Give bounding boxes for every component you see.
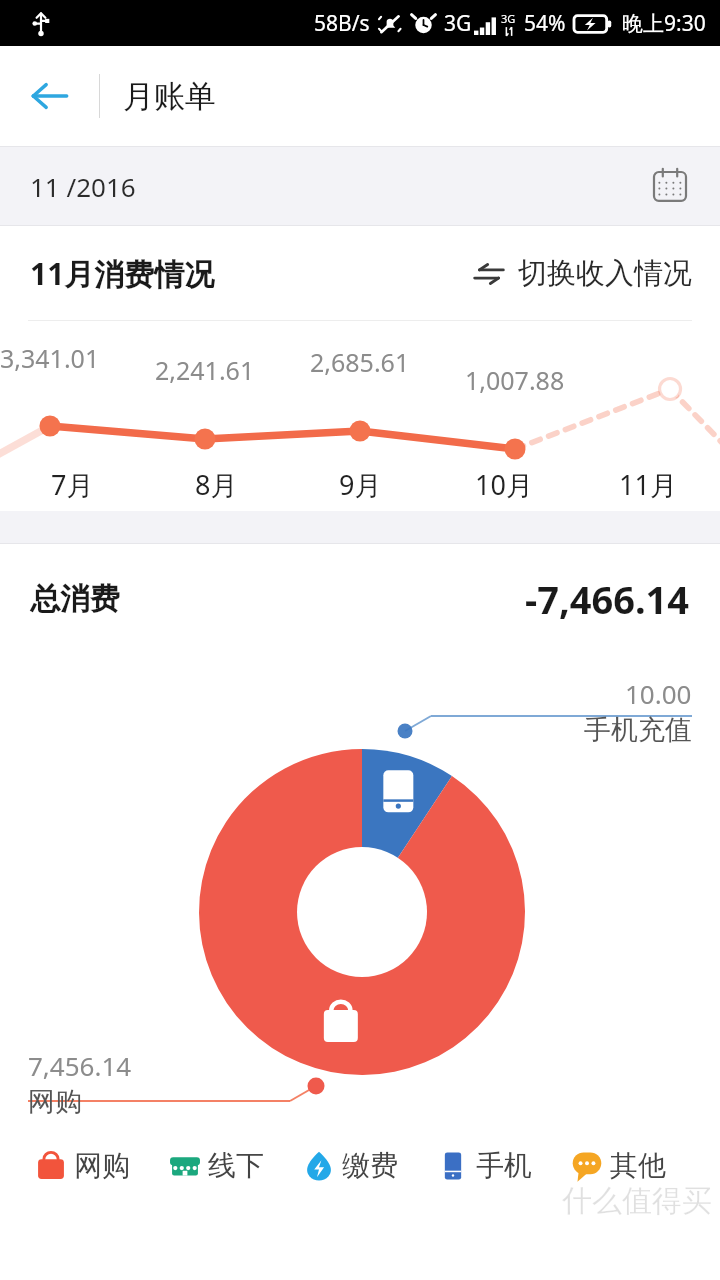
- staticText: 切换收入情况: [518, 255, 692, 292]
- staticText: 10月: [475, 466, 533, 503]
- staticText: 11月: [619, 466, 677, 503]
- staticText: 3G: [501, 11, 516, 26]
- staticText: 8月: [195, 466, 238, 503]
- button[interactable]: 缴费: [302, 1148, 398, 1183]
- staticText: 9月: [339, 466, 382, 503]
- staticText: 3G: [444, 9, 472, 38]
- staticText: 10.00: [625, 676, 692, 711]
- staticText: 什么值得买: [562, 1182, 712, 1220]
- staticText: 网购: [28, 1085, 82, 1119]
- staticText: 7月: [51, 466, 94, 503]
- staticText: 其他: [610, 1148, 666, 1183]
- button[interactable]: 手机: [436, 1148, 532, 1183]
- button[interactable]: 网购: [34, 1148, 130, 1183]
- button[interactable]: 11 /2016: [0, 147, 720, 225]
- staticText: -7,466.14: [525, 573, 690, 625]
- staticText: 58B/s: [314, 9, 370, 38]
- button[interactable]: 线下: [168, 1148, 264, 1183]
- staticText: 手机充值: [584, 713, 692, 747]
- staticText: 2,685.61: [310, 345, 410, 379]
- staticText: 2,241.61: [155, 353, 255, 387]
- button[interactable]: Choose month: [642, 158, 698, 214]
- staticText: 11 /2016: [30, 169, 136, 204]
- staticText: 缴费: [342, 1148, 398, 1183]
- button[interactable]: 切换收入情况: [472, 255, 692, 292]
- staticText: 7,456.14: [28, 1048, 132, 1083]
- staticText: 11月消费情况: [30, 253, 215, 294]
- staticText: 总消费: [30, 580, 120, 618]
- staticText: 3,341.01: [0, 341, 100, 375]
- staticText: 晚上9:30: [622, 9, 706, 38]
- staticText: 网购: [74, 1148, 130, 1183]
- staticText: 54%: [524, 9, 566, 38]
- button[interactable]: Back: [18, 64, 82, 128]
- staticText: 1,007.88: [465, 363, 565, 397]
- staticText: 月账单: [123, 77, 216, 116]
- staticText: 线下: [208, 1148, 264, 1183]
- button[interactable]: 其他: [570, 1148, 666, 1183]
- staticText: 手机: [476, 1148, 532, 1183]
